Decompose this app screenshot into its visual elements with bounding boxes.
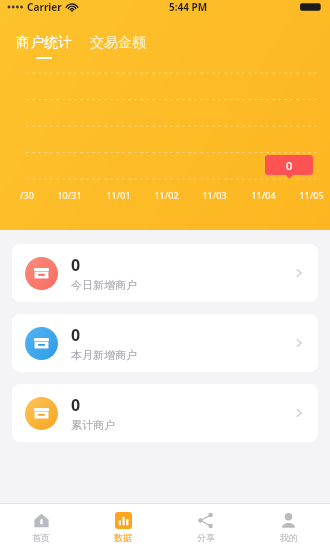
staticText: 11/04 — [251, 189, 276, 201]
button[interactable]: 分享 — [164, 504, 247, 550]
button[interactable]: 首页 — [0, 504, 82, 550]
staticText: 10/31 — [57, 189, 82, 201]
staticText: 我的 — [280, 532, 298, 543]
staticText: 11/05 — [299, 189, 324, 201]
staticText: 11/01 — [106, 189, 131, 201]
staticText: 0 — [286, 158, 293, 173]
staticText: 5:44 PM — [169, 0, 208, 14]
staticText: 0 — [71, 254, 81, 276]
staticText: /30 — [20, 189, 34, 201]
button[interactable]: 0 — [12, 384, 318, 442]
staticText: 本月新增商户 — [71, 348, 137, 362]
staticText: Carrier — [27, 0, 62, 14]
staticText: 今日新增商户 — [71, 278, 137, 292]
button[interactable]: 0 — [12, 314, 318, 372]
staticText: 交易金额 — [90, 34, 146, 52]
staticText: 0 — [71, 324, 81, 346]
staticText: 分享 — [197, 532, 215, 543]
staticText: 0 — [71, 394, 81, 416]
button[interactable]: 交易金额 — [88, 34, 148, 59]
button[interactable]: 数据 — [82, 504, 164, 550]
staticText: 11/02 — [154, 189, 179, 201]
staticText: 首页 — [32, 532, 50, 543]
staticText: 数据 — [114, 532, 132, 543]
staticText: 商户统计 — [16, 34, 72, 52]
button[interactable]: 商户统计 — [14, 34, 74, 59]
staticText: 累计商户 — [71, 418, 115, 432]
staticText: 11/03 — [202, 189, 227, 201]
button[interactable]: 我的 — [247, 504, 330, 550]
button[interactable]: 0 — [12, 244, 318, 302]
